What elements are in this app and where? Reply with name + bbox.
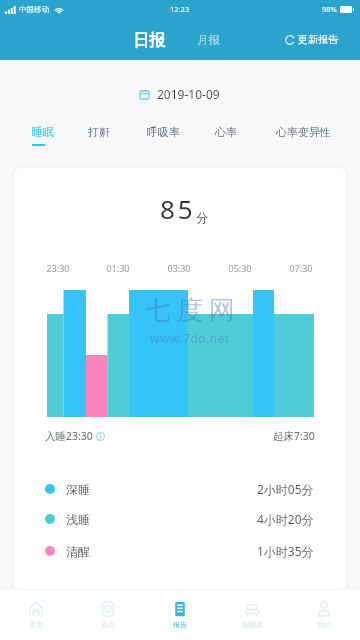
button[interactable]: 呼吸率	[128, 122, 198, 147]
button[interactable]: 月报	[193, 28, 224, 52]
staticText: 睡眠	[32, 125, 54, 139]
staticText: 85	[160, 191, 196, 226]
staticText: 我的	[317, 620, 331, 629]
button[interactable]: 睡眠	[8, 122, 78, 149]
staticText: www.7do.net	[150, 330, 230, 346]
staticText: 2019-10-09	[157, 86, 220, 102]
staticText: 中国移动	[19, 5, 49, 14]
button[interactable]: 智能床	[216, 595, 288, 635]
staticText: 七度网	[142, 294, 238, 327]
staticText: 日报	[133, 31, 165, 51]
staticText: 深睡	[66, 482, 90, 497]
button[interactable]: 2019-10-09	[134, 80, 226, 108]
staticText: 心率	[215, 125, 237, 139]
staticText: 浅睡	[66, 512, 90, 527]
staticText: 遥控	[101, 620, 115, 629]
staticText: 05:30	[228, 262, 252, 274]
button[interactable]: 报告	[144, 595, 216, 635]
staticText: 03:30	[167, 262, 191, 274]
staticText: 12:23	[170, 4, 190, 14]
button[interactable]: 心率变异性	[268, 122, 338, 147]
button[interactable]: 打鼾	[64, 122, 134, 147]
button[interactable]: 我的	[288, 595, 360, 635]
staticText: 07:30	[289, 262, 313, 274]
staticText: 分	[196, 210, 208, 225]
staticText: 23:30	[46, 262, 70, 274]
button[interactable]: 首页	[0, 595, 72, 635]
staticText: 01:30	[106, 262, 130, 274]
staticText: 清醒	[66, 544, 90, 559]
staticText: 心率变异性	[276, 125, 331, 139]
staticText: 入睡23:30	[45, 429, 93, 443]
button[interactable]: 更新报告	[279, 29, 360, 50]
staticText: 起床7:30	[273, 429, 315, 443]
button[interactable]: 日报	[129, 26, 169, 56]
staticText: 98%	[322, 4, 337, 14]
staticText: 2小时05分	[257, 481, 314, 497]
button[interactable]: 心率	[191, 122, 261, 147]
staticText: 呼吸率	[147, 125, 180, 139]
staticText: 报告	[173, 620, 187, 629]
button[interactable]: 遥控	[72, 595, 144, 635]
staticText: 月报	[197, 33, 220, 47]
staticText: 更新报告	[298, 33, 338, 46]
staticText: 智能床	[242, 620, 263, 629]
staticText: 首页	[29, 620, 43, 629]
staticText: 1小时35分	[257, 543, 314, 559]
staticText: 4小时20分	[257, 511, 314, 527]
staticText: 打鼾	[88, 125, 110, 139]
